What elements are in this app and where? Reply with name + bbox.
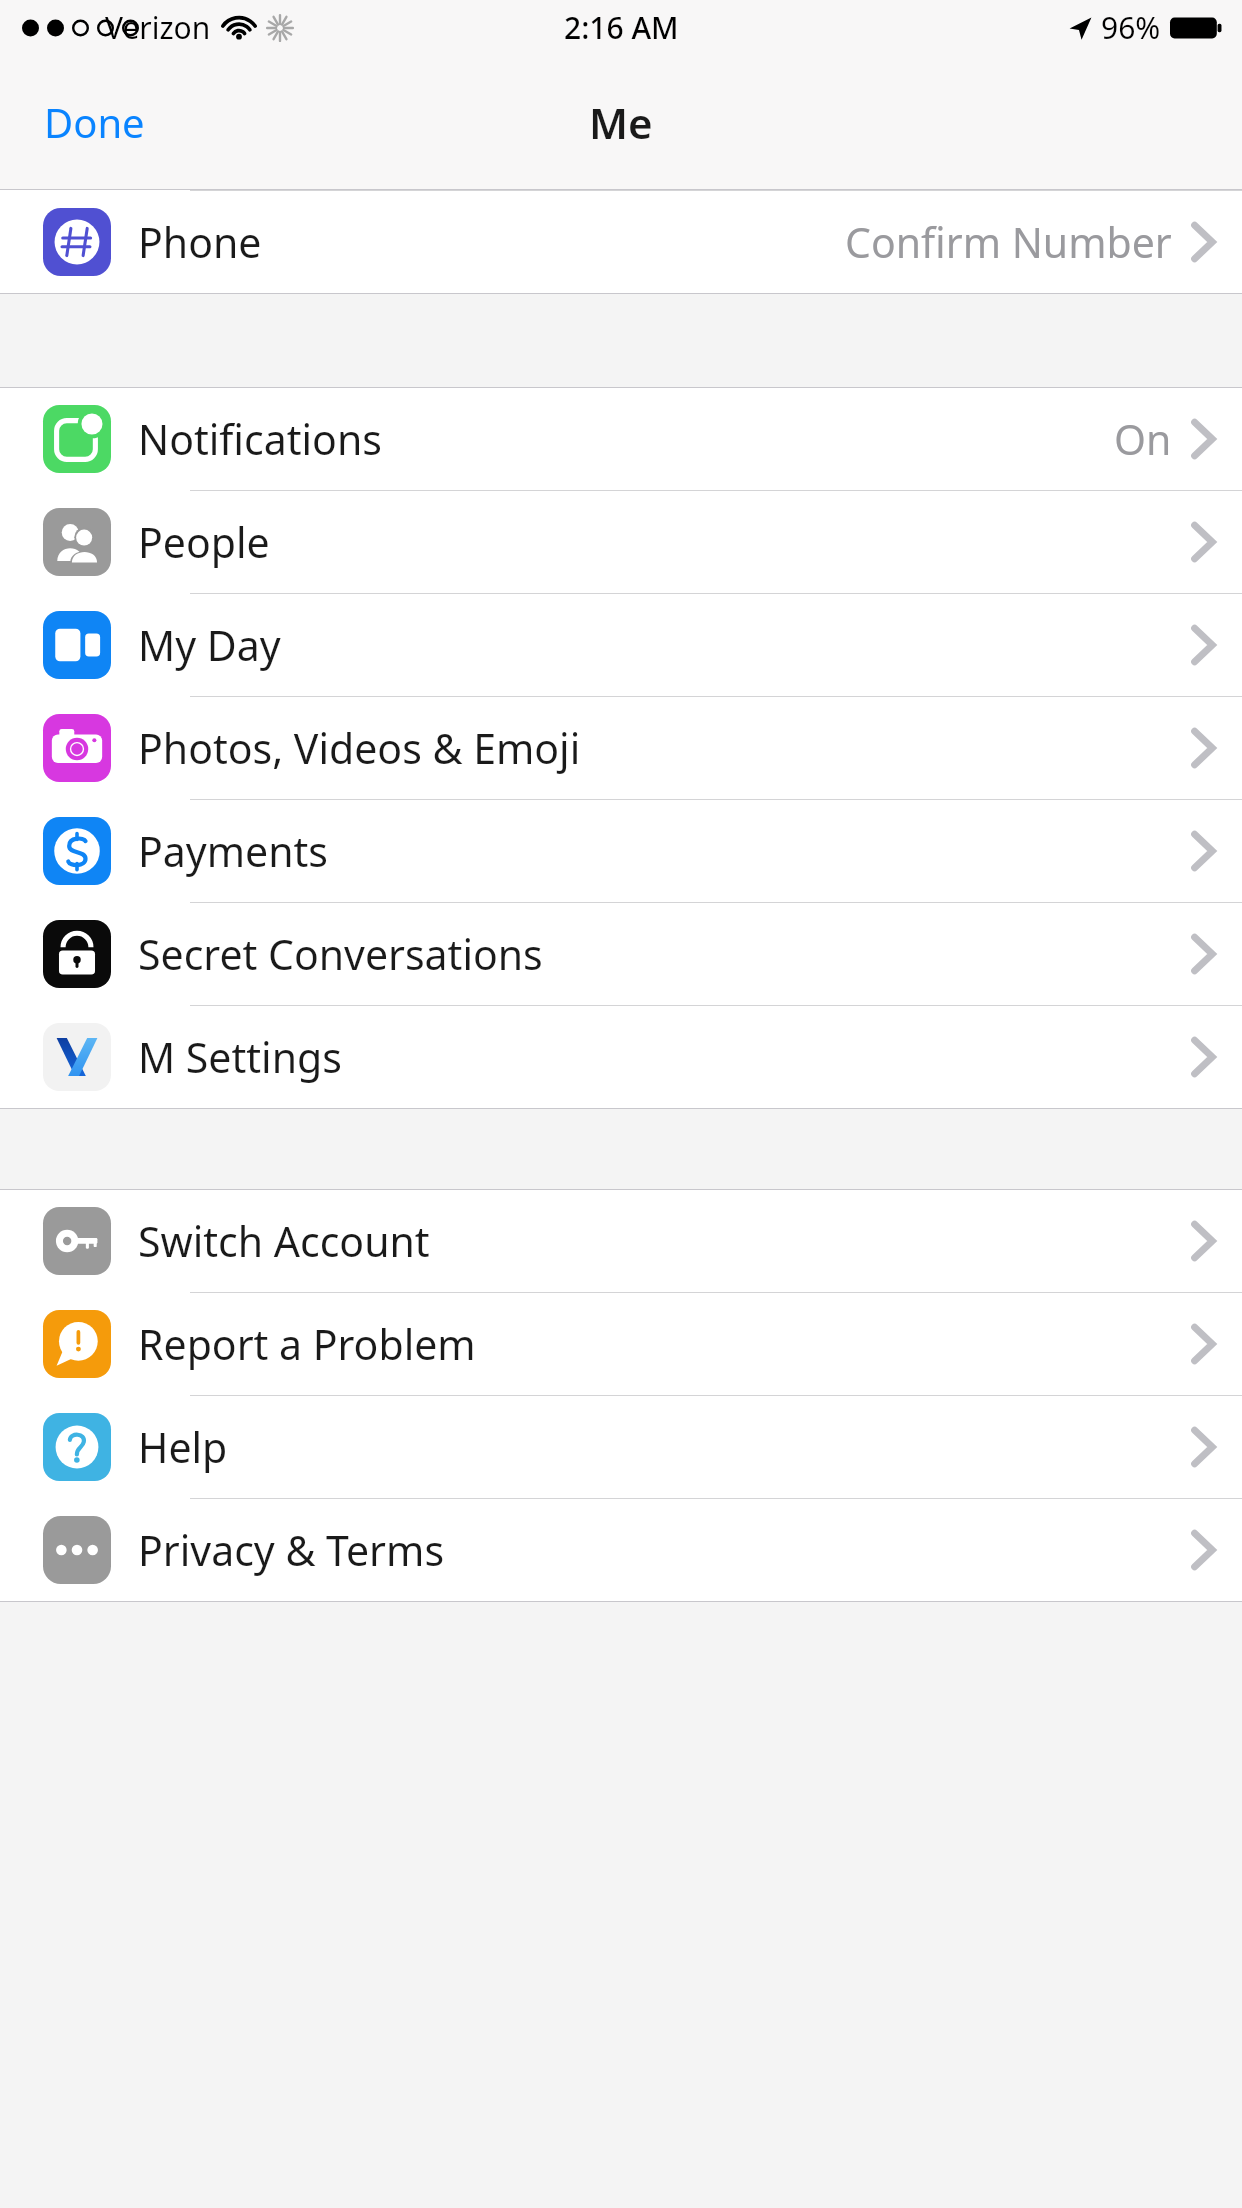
staticText: On bbox=[1114, 411, 1172, 467]
button[interactable]: Help bbox=[0, 1396, 1242, 1499]
staticText: Confirm Number bbox=[845, 214, 1172, 270]
staticText: Switch Account bbox=[138, 1213, 1192, 1269]
staticText: 96% bbox=[1101, 7, 1161, 48]
button[interactable]: People bbox=[0, 491, 1242, 594]
staticText: Verizon bbox=[105, 7, 211, 48]
staticText: People bbox=[138, 514, 1192, 570]
button[interactable]: Switch Account bbox=[0, 1190, 1242, 1293]
staticText: Done bbox=[44, 95, 145, 149]
button[interactable]: Secret Conversations bbox=[0, 903, 1242, 1006]
button[interactable]: M Settings bbox=[0, 1006, 1242, 1108]
staticText: Notifications bbox=[138, 411, 1114, 467]
button[interactable]: Privacy & Terms bbox=[0, 1499, 1242, 1601]
staticText: Report a Problem bbox=[138, 1316, 1192, 1372]
staticText: Payments bbox=[138, 823, 1192, 879]
button[interactable]: Report a Problem bbox=[0, 1293, 1242, 1396]
staticText: Help bbox=[138, 1419, 1192, 1475]
staticText: 2:16 AM bbox=[564, 7, 679, 48]
button[interactable]: Photos, Videos & Emoji bbox=[0, 697, 1242, 800]
button[interactable]: Phone bbox=[0, 191, 1242, 293]
button[interactable]: Done bbox=[28, 85, 161, 159]
button[interactable]: Notifications bbox=[0, 388, 1242, 491]
staticText: M Settings bbox=[138, 1029, 1192, 1085]
staticText: Phone bbox=[138, 214, 845, 270]
staticText: Secret Conversations bbox=[138, 926, 1192, 982]
button[interactable]: Payments bbox=[0, 800, 1242, 903]
staticText: Me bbox=[589, 94, 653, 151]
button[interactable]: My Day bbox=[0, 594, 1242, 697]
staticText: Photos, Videos & Emoji bbox=[138, 720, 1192, 776]
staticText: Privacy & Terms bbox=[138, 1522, 1192, 1578]
staticText: My Day bbox=[138, 617, 1192, 673]
